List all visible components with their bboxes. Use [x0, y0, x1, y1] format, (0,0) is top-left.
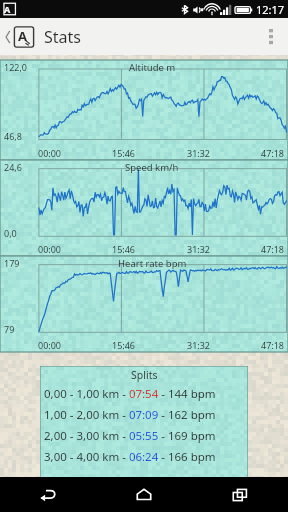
staticText: 00:00: [38, 243, 62, 255]
staticText: 2,00 - 3,00 km - 05:55 - 169 bpm: [44, 428, 216, 444]
staticText: 15:46: [112, 339, 136, 351]
button[interactable]: Home: [96, 477, 192, 512]
staticText: 0,00 - 1,00 km - 07:54 - 144 bpm: [44, 386, 216, 402]
staticText: 31:32: [187, 147, 211, 159]
button[interactable]: 3,00 - 4,00 km - 06:24 - 166 bpm: [40, 446, 248, 467]
staticText: Splits: [131, 368, 158, 382]
staticText: Speed km/h: [125, 161, 179, 174]
staticText: 15:46: [112, 243, 136, 255]
button[interactable]: More options: [254, 18, 288, 55]
button[interactable]: Navigate up: [3, 22, 37, 52]
staticText: 00:00: [38, 147, 62, 159]
staticText: 12:17: [256, 2, 285, 17]
staticText: 47:18: [261, 339, 285, 351]
staticText: 3,00 - 4,00 km - 06:24 - 166 bpm: [44, 449, 216, 465]
staticText: A: [18, 27, 27, 45]
staticText: 1,00 - 2,00 km - 07:09 - 162 bpm: [44, 407, 216, 423]
staticText: 31:32: [187, 243, 211, 255]
button[interactable]: 0,00 - 1,00 km - 07:54 - 144 bpm: [40, 383, 248, 404]
staticText: 31:32: [187, 339, 211, 351]
button[interactable]: Back: [0, 477, 96, 512]
staticText: Altitude m: [129, 61, 176, 74]
staticText: 00:00: [38, 339, 62, 351]
staticText: 179: [4, 257, 20, 269]
button[interactable]: 1,00 - 2,00 km - 07:09 - 162 bpm: [40, 404, 248, 425]
staticText: 0,0: [4, 227, 17, 239]
staticText: A: [4, 3, 11, 15]
staticText: 47:18: [261, 243, 285, 255]
staticText: 46,8: [4, 130, 22, 142]
staticText: 122,0: [4, 61, 28, 73]
staticText: 15:46: [112, 147, 136, 159]
staticText: Stats: [44, 26, 81, 48]
staticText: 47:18: [261, 147, 285, 159]
button[interactable]: Recent apps: [192, 477, 288, 512]
staticText: 79: [4, 323, 15, 335]
staticText: Heart rate bpm: [118, 257, 187, 270]
staticText: 24,6: [4, 161, 22, 173]
button[interactable]: 2,00 - 3,00 km - 05:55 - 169 bpm: [40, 425, 248, 446]
